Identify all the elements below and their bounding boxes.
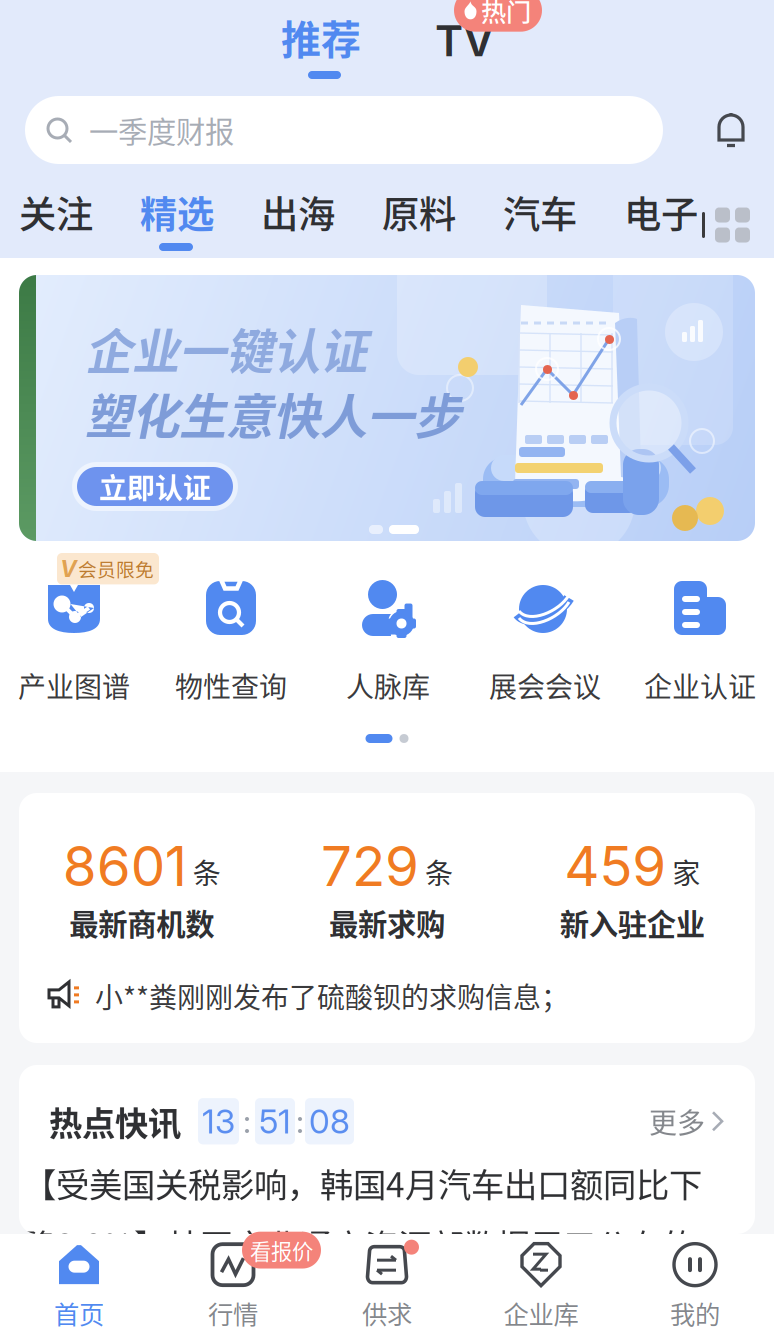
staticText: 热点快讯 <box>49 1097 181 1145</box>
button[interactable]: 企业认证 <box>626 541 774 711</box>
staticText: 电子 <box>624 185 698 239</box>
staticText: 13 <box>202 1101 235 1141</box>
button[interactable]: 物性查询 <box>157 541 305 711</box>
staticText: 塑化生意快人一步 <box>85 379 461 447</box>
button[interactable]: 产业图谱 <box>0 541 148 711</box>
staticText: 热门 <box>481 0 531 29</box>
staticText: 行情 <box>208 1295 258 1331</box>
staticText: V <box>60 555 77 582</box>
staticText: 人脉库 <box>346 665 430 705</box>
staticText: 我的 <box>670 1295 720 1331</box>
staticText: 立即认证 <box>99 466 211 507</box>
staticText: 物性查询 <box>175 665 287 705</box>
staticText: 精选 <box>140 185 214 239</box>
button[interactable]: 更多 <box>649 1095 725 1147</box>
staticText: 729 <box>321 833 419 899</box>
staticText: 08 <box>309 1101 350 1141</box>
staticText: 企业一键认证 <box>85 314 367 382</box>
staticText: 关注 <box>19 185 93 239</box>
staticText: 小**粪刚刚发布了硫酸钡的求购信息； <box>95 976 569 1016</box>
button[interactable]: TV <box>434 0 586 96</box>
button[interactable]: 展会会议 <box>471 541 619 711</box>
button[interactable]: 一季度财报 <box>25 96 663 164</box>
staticText: 企业认证 <box>644 665 756 705</box>
button[interactable]: 精选 <box>121 164 242 258</box>
button[interactable]: All categories <box>702 205 756 245</box>
button[interactable]: 汽车 <box>484 164 605 258</box>
staticText: : <box>296 1102 304 1141</box>
staticText: 8601 <box>63 833 187 899</box>
staticText: 看报价 <box>250 1235 313 1266</box>
button[interactable]: 看报价 <box>156 1234 310 1331</box>
staticText: 家 <box>672 852 700 892</box>
button[interactable]: 关注 <box>0 164 121 258</box>
button[interactable]: 电子 <box>605 164 726 258</box>
staticText: 展会会议 <box>489 665 601 705</box>
staticText: 一季度财报 <box>89 109 234 151</box>
button[interactable]: 推荐 <box>243 0 395 96</box>
staticText: 产业图谱 <box>18 665 130 705</box>
staticText: 会员限免 <box>78 555 154 582</box>
staticText: 51 <box>259 1101 291 1141</box>
staticText: 最新求购 <box>329 901 445 944</box>
staticText: 出海 <box>261 185 335 239</box>
staticText: 更多 <box>649 1101 705 1141</box>
staticText: 推荐 <box>281 8 361 66</box>
button[interactable]: 人脉库 <box>314 541 462 711</box>
staticText: : <box>243 1102 251 1141</box>
staticText: 【受美国关税影响，韩国4月汽车出口额同比下降3.8%】韩国产业通商资源部数据周三… <box>23 1158 702 1329</box>
button[interactable]: Notifications <box>688 96 774 164</box>
staticText: 供求 <box>362 1295 412 1331</box>
button[interactable]: 供求 <box>310 1234 464 1331</box>
staticText: 最新商机数 <box>69 901 214 944</box>
staticText: 459 <box>564 833 666 899</box>
button[interactable]: 首页 <box>2 1234 156 1331</box>
button[interactable]: 企业一键认证 <box>19 275 755 541</box>
staticText: 企业库 <box>503 1295 578 1331</box>
staticText: 首页 <box>54 1295 104 1331</box>
button[interactable]: 原料 <box>363 164 484 258</box>
staticText: 条 <box>425 852 453 892</box>
button[interactable]: 企业库 <box>464 1234 618 1331</box>
button[interactable]: 我的 <box>618 1234 772 1331</box>
staticText: TV <box>435 15 494 67</box>
staticText: 汽车 <box>503 185 577 239</box>
staticText: 条 <box>193 852 221 892</box>
staticText: 原料 <box>382 185 456 239</box>
button[interactable]: 出海 <box>242 164 363 258</box>
staticText: 新入驻企业 <box>560 901 705 944</box>
